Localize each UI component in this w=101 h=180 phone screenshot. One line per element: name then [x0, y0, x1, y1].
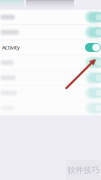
button[interactable] — [0, 86, 101, 100]
staticText: 软件技巧 — [67, 165, 99, 175]
button[interactable] — [0, 101, 101, 115]
button[interactable] — [0, 10, 101, 24]
button[interactable] — [0, 55, 101, 70]
staticText: Activity — [2, 44, 20, 51]
button[interactable]: Activity — [0, 40, 101, 55]
button[interactable] — [0, 25, 101, 40]
button[interactable] — [0, 70, 101, 85]
